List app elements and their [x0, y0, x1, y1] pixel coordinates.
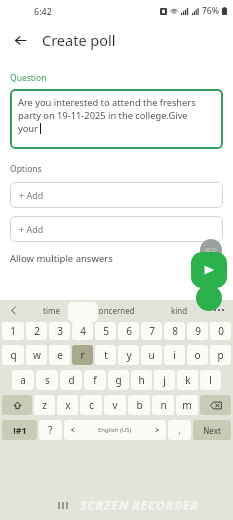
staticText: r [80, 348, 85, 362]
button[interactable]: 9 [187, 322, 208, 340]
staticText: !#1 [13, 424, 27, 436]
staticText: Are you interested to attend the fresher… [18, 96, 196, 109]
button[interactable]: concerned [83, 300, 147, 320]
button[interactable]: Previous suggestions [6, 303, 20, 317]
button[interactable]: p [210, 345, 231, 365]
staticText: k [185, 373, 191, 387]
button[interactable]: Back [8, 28, 32, 52]
staticText: Create poll [42, 30, 116, 50]
staticText: Next [203, 425, 221, 436]
button[interactable]: k [177, 370, 198, 390]
button[interactable]: e [49, 345, 70, 365]
button[interactable]: 3 [49, 322, 70, 340]
staticText: z [42, 398, 47, 412]
staticText: b [136, 398, 143, 412]
staticText: time [43, 305, 60, 316]
button[interactable]: . [168, 420, 191, 440]
button[interactable]: 6 [118, 322, 139, 340]
staticText: kind [171, 305, 188, 316]
button[interactable]: 4 [72, 322, 93, 340]
button[interactable]: c [80, 395, 102, 415]
staticText: 6 [126, 324, 132, 338]
staticText: l [209, 373, 212, 387]
button[interactable]: 8 [164, 322, 185, 340]
staticText: w [33, 348, 41, 362]
staticText: h [138, 373, 145, 387]
staticText: Question [10, 72, 47, 84]
button[interactable]: h [131, 370, 152, 390]
staticText: o [194, 348, 201, 362]
staticText: SCREEN RECORDER [80, 496, 199, 514]
staticText: concerned [95, 305, 135, 316]
staticText: d [68, 373, 75, 387]
button[interactable]: z [34, 395, 55, 415]
button[interactable]: t [95, 345, 116, 365]
staticText: s [45, 373, 50, 387]
staticText: 6:42 [34, 5, 52, 17]
button[interactable]: g [108, 370, 129, 390]
button[interactable]: kind [147, 300, 211, 320]
button[interactable]: + Add [10, 216, 223, 242]
button[interactable]: x [57, 395, 78, 415]
button[interactable]: Send poll [191, 252, 227, 288]
staticText: 7 [149, 324, 155, 338]
button[interactable]: Backspace [200, 395, 231, 415]
staticText: p [217, 348, 224, 362]
button[interactable]: 0 [210, 322, 231, 340]
button[interactable]: ? [39, 420, 62, 440]
button[interactable]: 5 [95, 322, 116, 340]
staticText: 76% [202, 5, 219, 17]
button[interactable]: q [2, 345, 24, 365]
staticText: q [10, 348, 17, 362]
button[interactable]: + Add [10, 182, 223, 208]
button[interactable]: d [60, 370, 82, 390]
staticText: j [163, 373, 166, 387]
staticText: t [104, 348, 108, 362]
button[interactable]: w [26, 345, 47, 365]
staticText: f [93, 373, 97, 387]
button[interactable]: r [72, 345, 93, 365]
button[interactable]: s [36, 370, 58, 390]
button[interactable]: u [141, 345, 162, 365]
staticText: English (US) [98, 426, 132, 434]
button[interactable]: 2 [26, 322, 47, 340]
staticText: e [57, 348, 63, 362]
staticText: . [178, 423, 181, 437]
staticText: y [126, 348, 132, 362]
staticText: u [148, 348, 155, 362]
staticText: m [182, 398, 192, 412]
staticText: + Add [19, 189, 44, 201]
staticText: Options [10, 163, 42, 175]
button[interactable]: Shift [2, 395, 32, 415]
staticText: 5 [103, 324, 109, 338]
button[interactable]: 7 [141, 322, 162, 340]
staticText: a [20, 373, 26, 387]
staticText: 4 [80, 324, 86, 338]
button[interactable]: 1 [2, 322, 24, 340]
button[interactable]: Space, English (US) [64, 420, 166, 440]
staticText: i [173, 348, 176, 362]
button[interactable]: m [176, 395, 198, 415]
staticText: 2 [34, 324, 40, 338]
button[interactable]: o [187, 345, 208, 365]
button[interactable]: i [164, 345, 185, 365]
staticText: n [160, 398, 167, 412]
staticText: c [89, 398, 94, 412]
staticText: party on 19-11-2025 in the college.Give [18, 109, 188, 122]
button[interactable]: v [104, 395, 126, 415]
button[interactable]: !#1 [2, 420, 37, 440]
button[interactable]: Next [193, 420, 231, 440]
button[interactable]: f [84, 370, 106, 390]
button[interactable]: a [12, 370, 34, 390]
staticText: 3 [57, 324, 63, 338]
button[interactable]: b [128, 395, 150, 415]
button[interactable]: y [118, 345, 139, 365]
button[interactable]: More options [211, 302, 227, 318]
button[interactable]: n [152, 395, 174, 415]
button[interactable]: time [20, 300, 83, 320]
button[interactable]: l [200, 370, 221, 390]
button[interactable]: Are you interested to attend the fresher… [10, 89, 223, 149]
staticText: ? [48, 423, 53, 437]
button[interactable]: j [154, 370, 175, 390]
